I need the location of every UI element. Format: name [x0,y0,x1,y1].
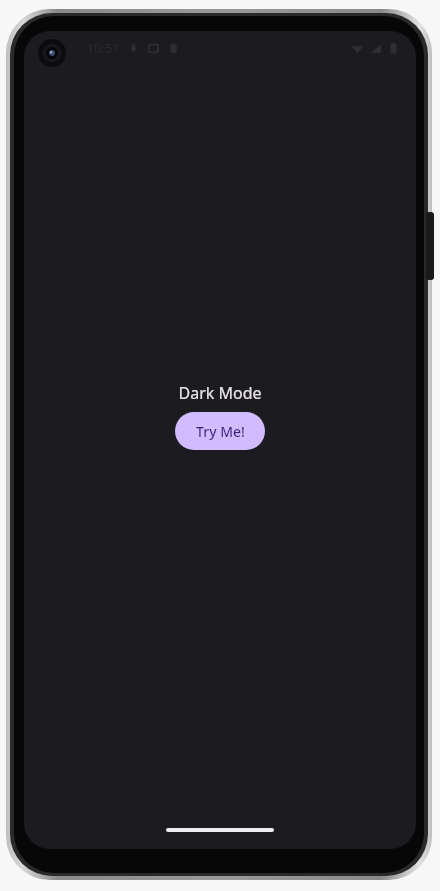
other: Power button [426,212,434,280]
staticText: 10:51 [86,39,120,57]
staticText: Try Me! [196,422,245,441]
button[interactable]: Try Me! [175,412,265,450]
staticText: Dark Mode [178,382,262,404]
